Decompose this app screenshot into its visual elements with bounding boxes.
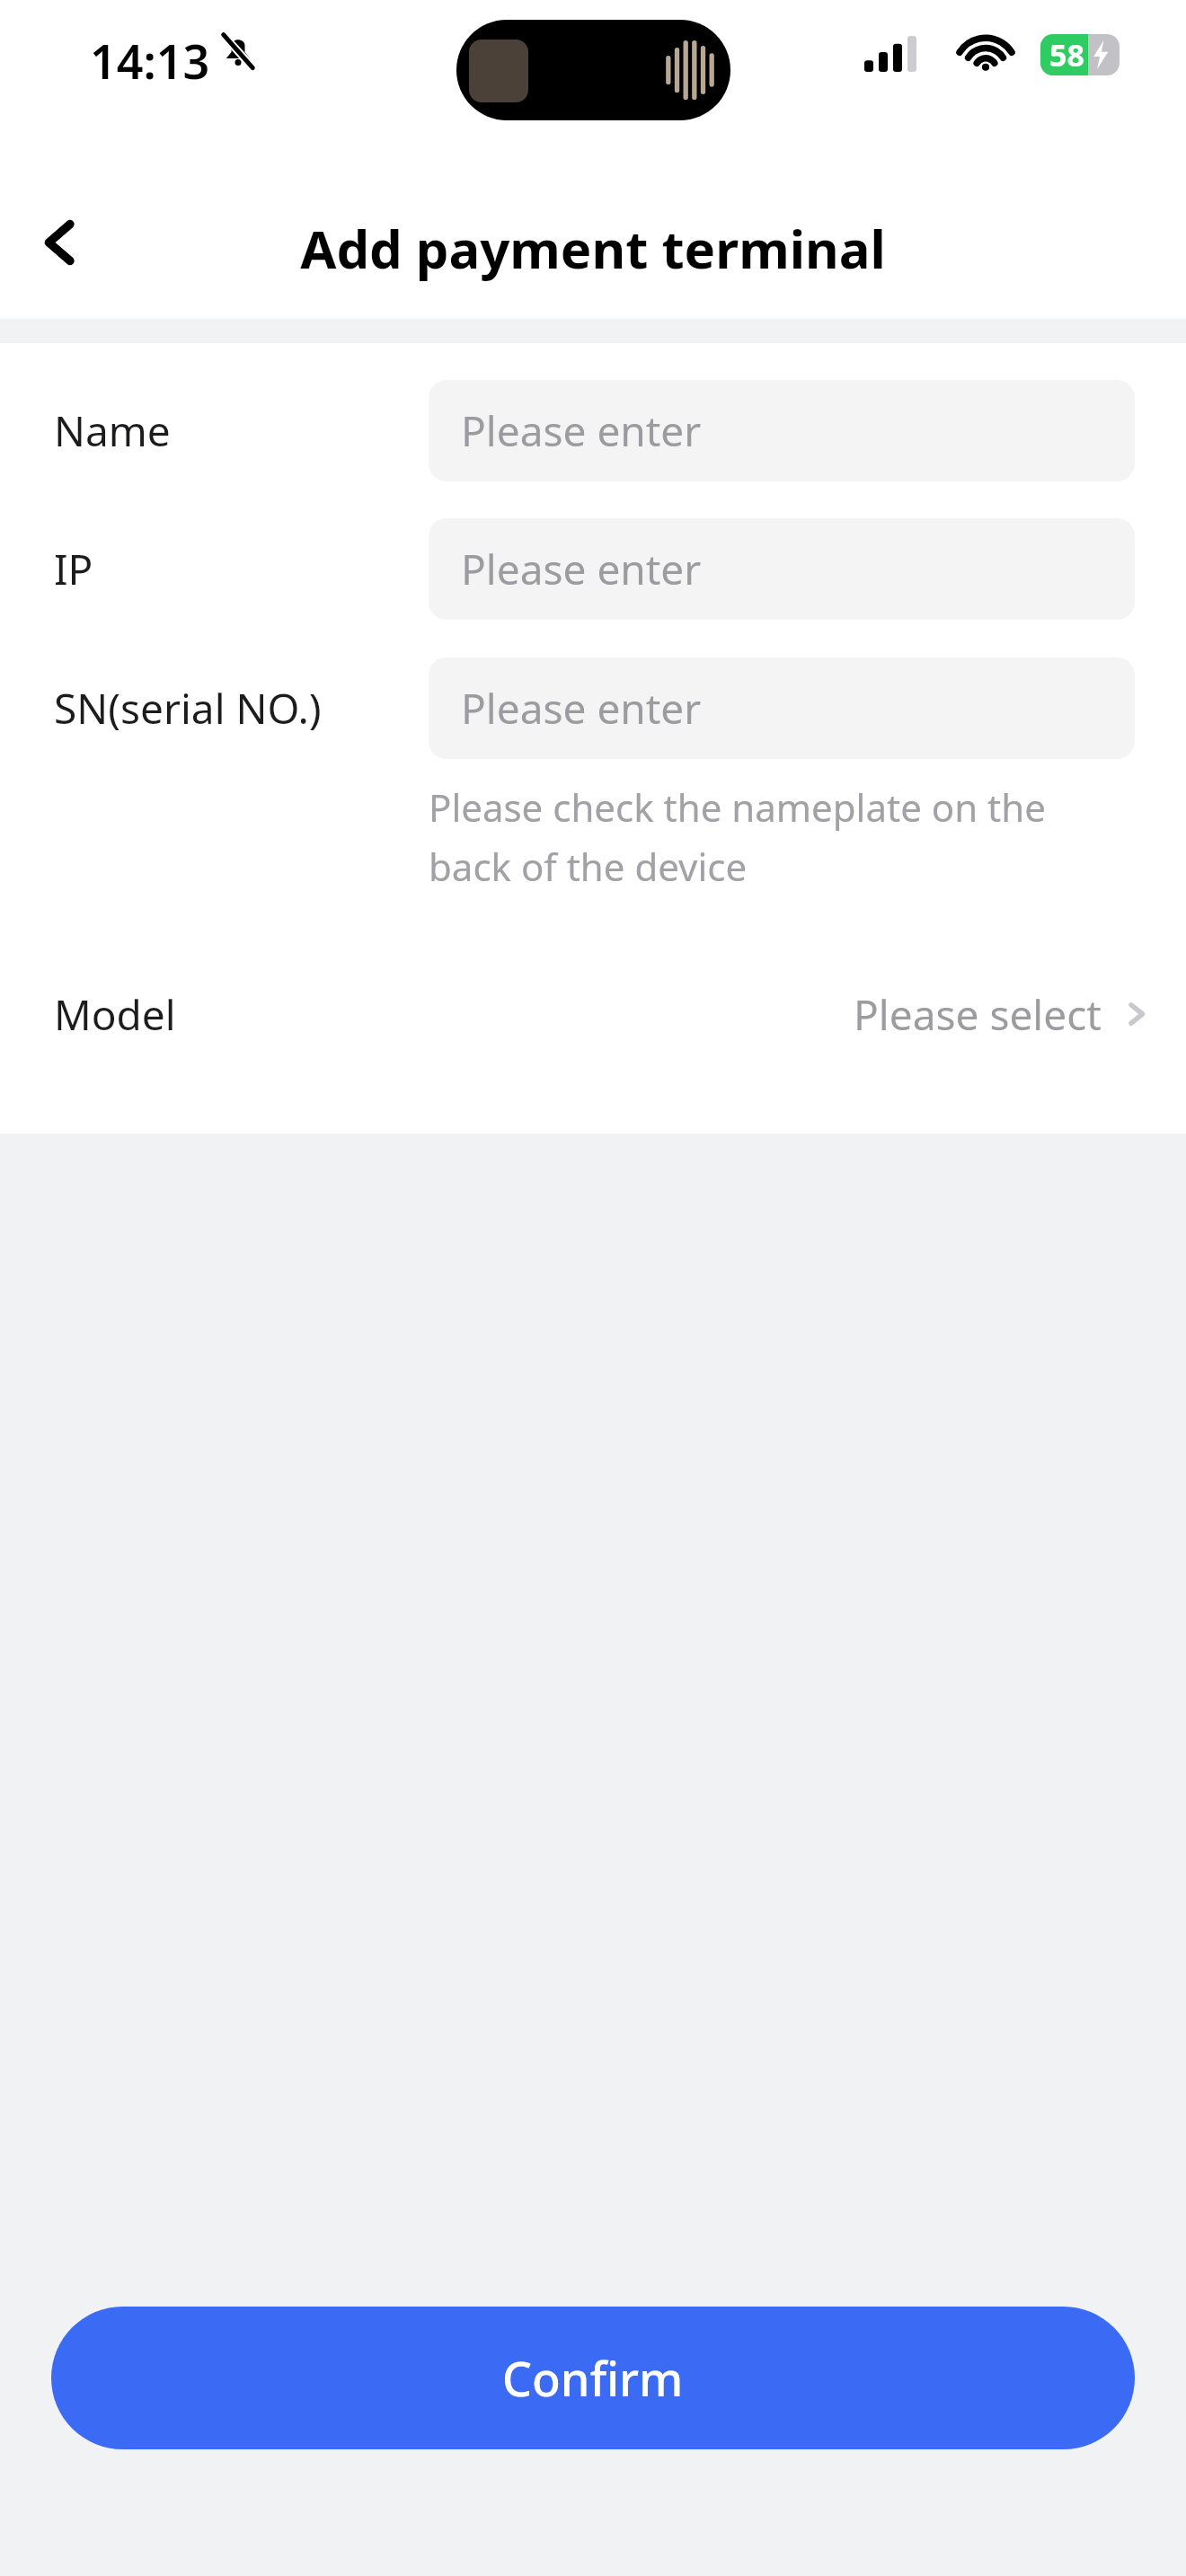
- staticText: Please enter: [461, 541, 702, 597]
- button[interactable]: Please enter: [429, 380, 1135, 481]
- staticText: Please check the nameplate on the back o…: [429, 781, 1165, 892]
- staticText: Please enter: [461, 680, 702, 737]
- staticText: IP: [54, 541, 93, 597]
- button[interactable]: Please enter: [429, 657, 1135, 759]
- staticText: Model: [54, 986, 176, 1043]
- button[interactable]: Confirm: [51, 2307, 1135, 2449]
- staticText: Please enter: [461, 402, 702, 459]
- button[interactable]: Back: [18, 199, 104, 286]
- staticText: Confirm: [502, 2346, 684, 2410]
- staticText: SN(serial NO.): [54, 680, 322, 737]
- staticText: Name: [54, 402, 171, 459]
- staticText: Add payment terminal: [300, 213, 886, 284]
- button[interactable]: Please enter: [429, 518, 1135, 620]
- staticText: 14:13: [90, 29, 210, 93]
- button[interactable]: Model: [0, 956, 1186, 1072]
- staticText: Please select: [854, 986, 1102, 1043]
- staticText: 58: [1049, 34, 1084, 75]
